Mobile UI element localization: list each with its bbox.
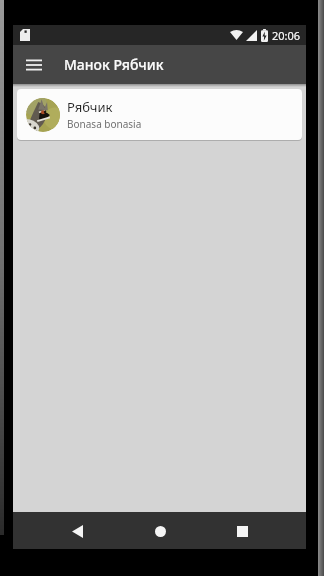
staticText: Манок Рябчик <box>64 55 164 74</box>
button[interactable] <box>224 513 260 549</box>
button[interactable] <box>59 513 95 549</box>
button[interactable] <box>142 513 178 549</box>
button[interactable]: Рябчик <box>17 89 302 140</box>
button[interactable] <box>26 59 42 71</box>
staticText: Bonasa bonasia <box>67 117 142 131</box>
staticText: 20:06 <box>272 28 301 43</box>
staticText: Рябчик <box>67 98 113 116</box>
